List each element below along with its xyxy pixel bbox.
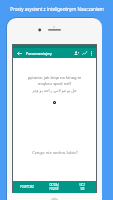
staticText: Porozmawiajmy <box>26 51 52 56</box>
staticText: pytanie: jak biqa na kinag te mojkeu spo… <box>26 75 83 86</box>
button[interactable]: DODAJ <box>40 181 68 193</box>
staticText: UCZ <box>79 183 85 187</box>
staticText: Czego nie wolno lubic? <box>32 149 78 155</box>
staticText: FISZKE <box>49 187 59 191</box>
button[interactable]: Add person <box>72 49 80 57</box>
button[interactable]: Back <box>15 49 24 58</box>
staticText: DODAJ <box>49 183 59 187</box>
staticText: Prosty asystent z inteligentnym Nauczani… <box>10 6 104 12</box>
button[interactable]: POWTORZ <box>13 181 40 193</box>
staticText: SIE <box>80 187 85 191</box>
staticText: جل يو مو لاس ر اجه بو وهر <box>32 88 77 93</box>
button[interactable]: Statistics <box>80 49 88 57</box>
button[interactable]: UCZ <box>68 181 96 193</box>
button[interactable]: More options <box>88 50 95 57</box>
staticText: POWTORZ <box>20 185 34 189</box>
